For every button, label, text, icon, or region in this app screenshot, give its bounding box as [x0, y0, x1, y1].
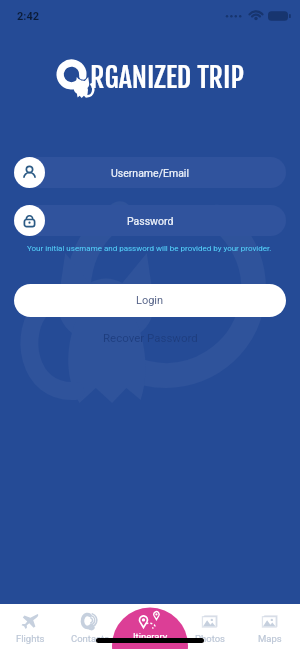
staticText: Itinerary: [133, 631, 168, 642]
button[interactable]: Maps: [240, 604, 300, 649]
button[interactable]: Flights: [0, 604, 60, 649]
button[interactable]: Password: [14, 205, 286, 236]
button[interactable]: Login: [14, 284, 286, 317]
staticText: Login: [136, 294, 164, 307]
button[interactable]: Contacts: [60, 604, 120, 649]
staticText: Username/Email: [111, 167, 189, 179]
button[interactable]: Photos: [180, 604, 240, 649]
button[interactable]: Recover Password: [95, 329, 206, 346]
staticText: Password: [127, 215, 174, 227]
staticText: Your initial username and password will …: [27, 244, 300, 253]
staticText: 2:42: [17, 10, 40, 23]
button[interactable]: Username/Email: [14, 157, 286, 188]
staticText: Contacts: [71, 633, 110, 644]
staticText: Flights: [16, 633, 45, 644]
staticText: Photos: [195, 633, 225, 644]
staticText: Maps: [258, 633, 282, 644]
button[interactable]: Itinerary: [0, 604, 300, 649]
staticText: RGANIZED TRIP: [90, 60, 245, 95]
